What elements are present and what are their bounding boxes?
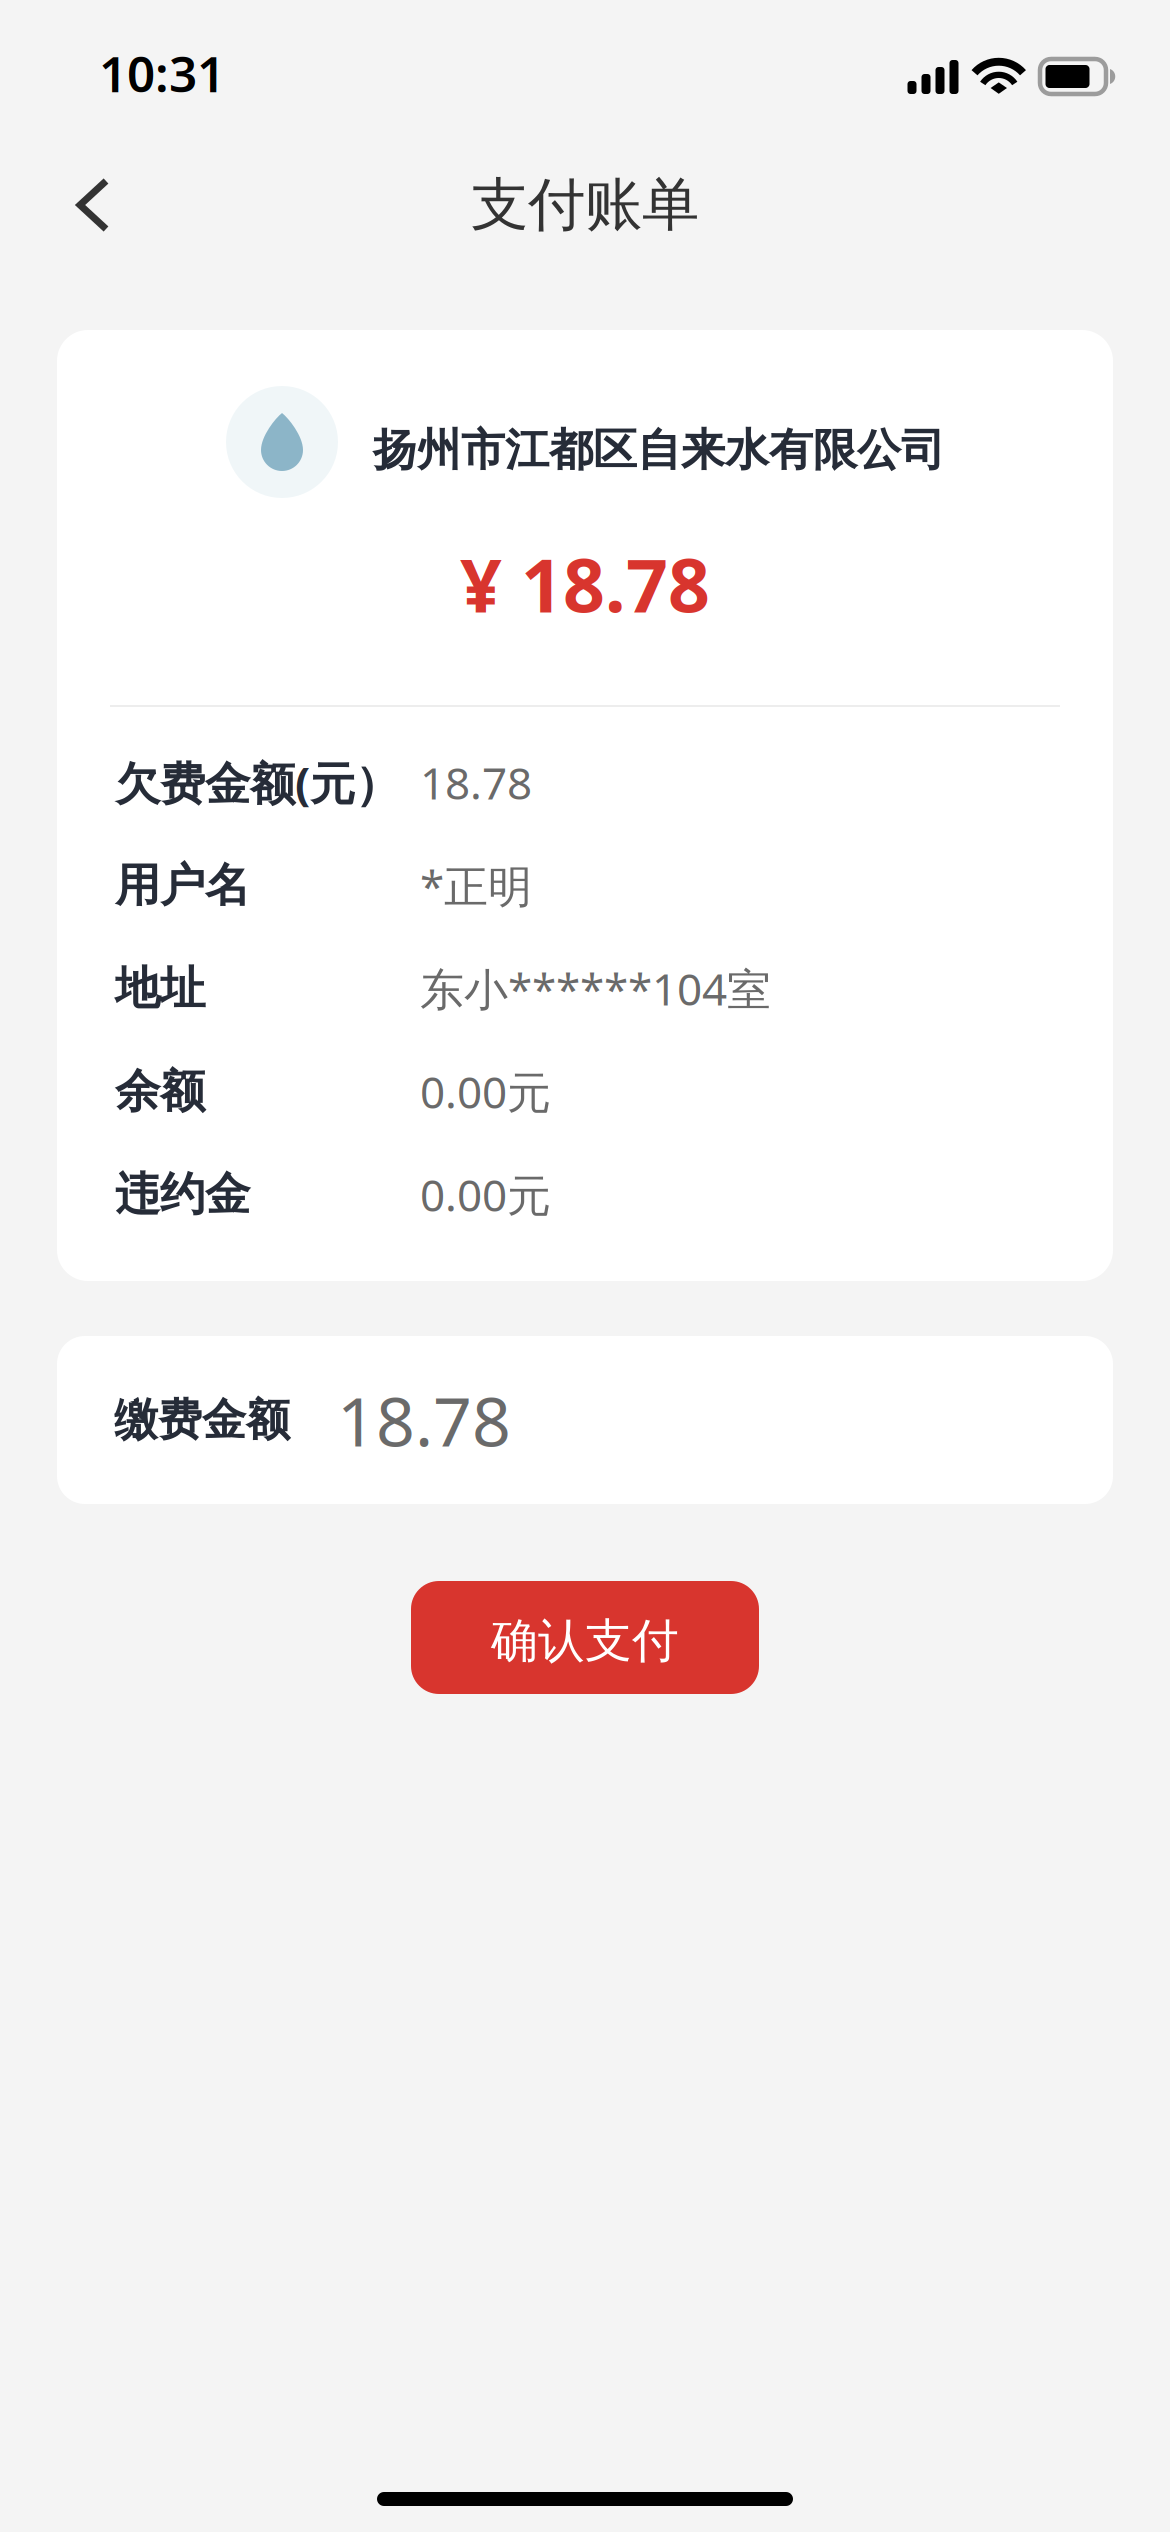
staticText: 确认支付 <box>491 1612 679 1670</box>
staticText: 0.00元 <box>420 1062 551 1121</box>
staticText: 缴费金额 <box>114 1393 290 1447</box>
staticText: 10:31 <box>99 40 225 106</box>
button[interactable]: 确认支付 <box>411 1581 759 1694</box>
staticText: 余额 <box>115 1064 205 1119</box>
staticText: 违约金 <box>115 1167 250 1222</box>
staticText: 扬州市江都区自来水有限公司 <box>373 423 945 477</box>
staticText: 欠费金额(元） <box>115 752 400 813</box>
staticText: ¥ 18.78 <box>460 535 710 633</box>
staticText: 地址 <box>115 961 205 1016</box>
staticText: 东小******104室 <box>420 959 771 1018</box>
staticText: 18.78 <box>337 1375 511 1465</box>
staticText: *正明 <box>420 856 532 915</box>
staticText: 0.00元 <box>420 1165 551 1224</box>
button[interactable]: 缴费金额 <box>57 1336 1113 1504</box>
staticText: 18.78 <box>420 753 532 812</box>
button[interactable]: Back <box>38 150 148 260</box>
staticText: 用户名 <box>115 858 250 913</box>
staticText: 支付账单 <box>471 170 699 240</box>
